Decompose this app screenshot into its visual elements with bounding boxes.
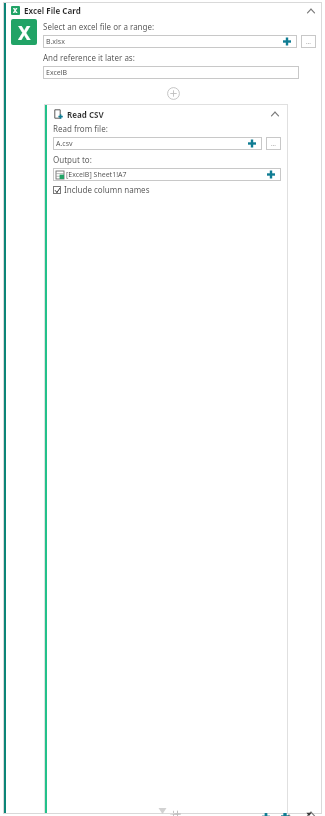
staticText: Select an excel file or a range:: [43, 21, 155, 32]
button[interactable]: X: [6, 2, 322, 19]
button[interactable]: Collapse: [305, 5, 317, 17]
other: Add value: [280, 35, 294, 48]
staticText: And reference it later as:: [43, 52, 135, 63]
other: Add value: [245, 137, 259, 150]
staticText: A.csv: [56, 139, 245, 149]
button[interactable]: [166, 86, 180, 100]
button[interactable]: A.csv: [53, 137, 262, 150]
button[interactable]: [ExcelB] Sheet1!A7: [53, 168, 281, 181]
button[interactable]: B.xlsx: [43, 35, 297, 48]
button[interactable]: Browse: [301, 35, 316, 48]
staticText: Output to:: [53, 154, 92, 165]
button[interactable]: Include column names: [53, 184, 150, 195]
staticText: ...: [271, 140, 276, 148]
staticText: X: [18, 20, 31, 45]
button[interactable]: Browse: [266, 137, 281, 150]
staticText: X: [13, 6, 18, 15]
staticText: Excel File Card: [24, 5, 81, 16]
staticText: [ExcelB] Sheet1!A7: [66, 170, 264, 180]
button[interactable]: Read CSV: [53, 107, 281, 121]
other: Add value: [264, 168, 278, 181]
button[interactable]: ExcelB: [43, 66, 299, 79]
staticText: Read from file:: [53, 123, 108, 134]
button[interactable]: Collapse: [269, 108, 281, 120]
staticText: B.xlsx: [46, 37, 280, 47]
staticText: ExcelB: [46, 68, 68, 78]
staticText: ...: [306, 38, 311, 46]
staticText: Include column names: [64, 184, 150, 195]
staticText: Read CSV: [67, 109, 104, 120]
